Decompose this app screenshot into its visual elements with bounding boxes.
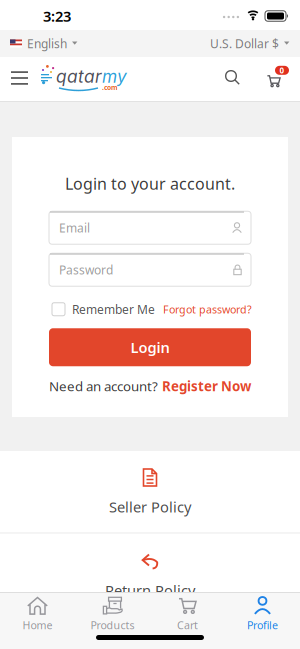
staticText: Email — [59, 220, 90, 236]
staticText: Products — [90, 618, 134, 632]
staticText: Register Now — [162, 377, 251, 395]
button[interactable]: Cart — [150, 594, 225, 632]
staticText: Forgot password? — [163, 302, 252, 316]
button[interactable]: Need an account? — [49, 377, 251, 395]
button[interactable]: Remember Me — [52, 301, 155, 317]
staticText: my — [102, 66, 127, 87]
button[interactable]: English — [0, 35, 78, 51]
button[interactable]: U.S. Dollar $ — [210, 35, 300, 51]
staticText: qatar — [56, 66, 102, 87]
staticText: 3:23 — [43, 6, 71, 26]
button[interactable]: Login — [49, 328, 251, 366]
staticText: U.S. Dollar $ — [210, 35, 279, 51]
button[interactable]: Products — [75, 594, 150, 632]
staticText: Cart — [177, 618, 198, 632]
button[interactable]: Profile — [225, 594, 300, 632]
staticText: Login — [130, 337, 169, 357]
staticText: Remember Me — [72, 301, 155, 317]
staticText: Return Policy — [105, 580, 195, 600]
button[interactable]: Forgot password? — [163, 302, 252, 316]
staticText: Need an account? — [49, 377, 158, 395]
button[interactable]: Menu — [3, 63, 36, 93]
staticText: English — [27, 35, 67, 51]
staticText: Seller Policy — [109, 497, 191, 516]
staticText: 0 — [279, 65, 284, 76]
button[interactable]: Return Policy — [0, 533, 300, 600]
staticText: Login to your account. — [65, 173, 235, 194]
button[interactable]: Seller Policy — [0, 451, 300, 532]
button[interactable]: Search — [217, 62, 248, 93]
staticText: Password — [59, 262, 113, 278]
staticText: Profile — [247, 618, 278, 632]
button[interactable]: Home — [0, 594, 75, 632]
staticText: .com — [102, 83, 118, 92]
button[interactable]: Cart — [262, 59, 293, 93]
staticText: Home — [22, 618, 52, 632]
